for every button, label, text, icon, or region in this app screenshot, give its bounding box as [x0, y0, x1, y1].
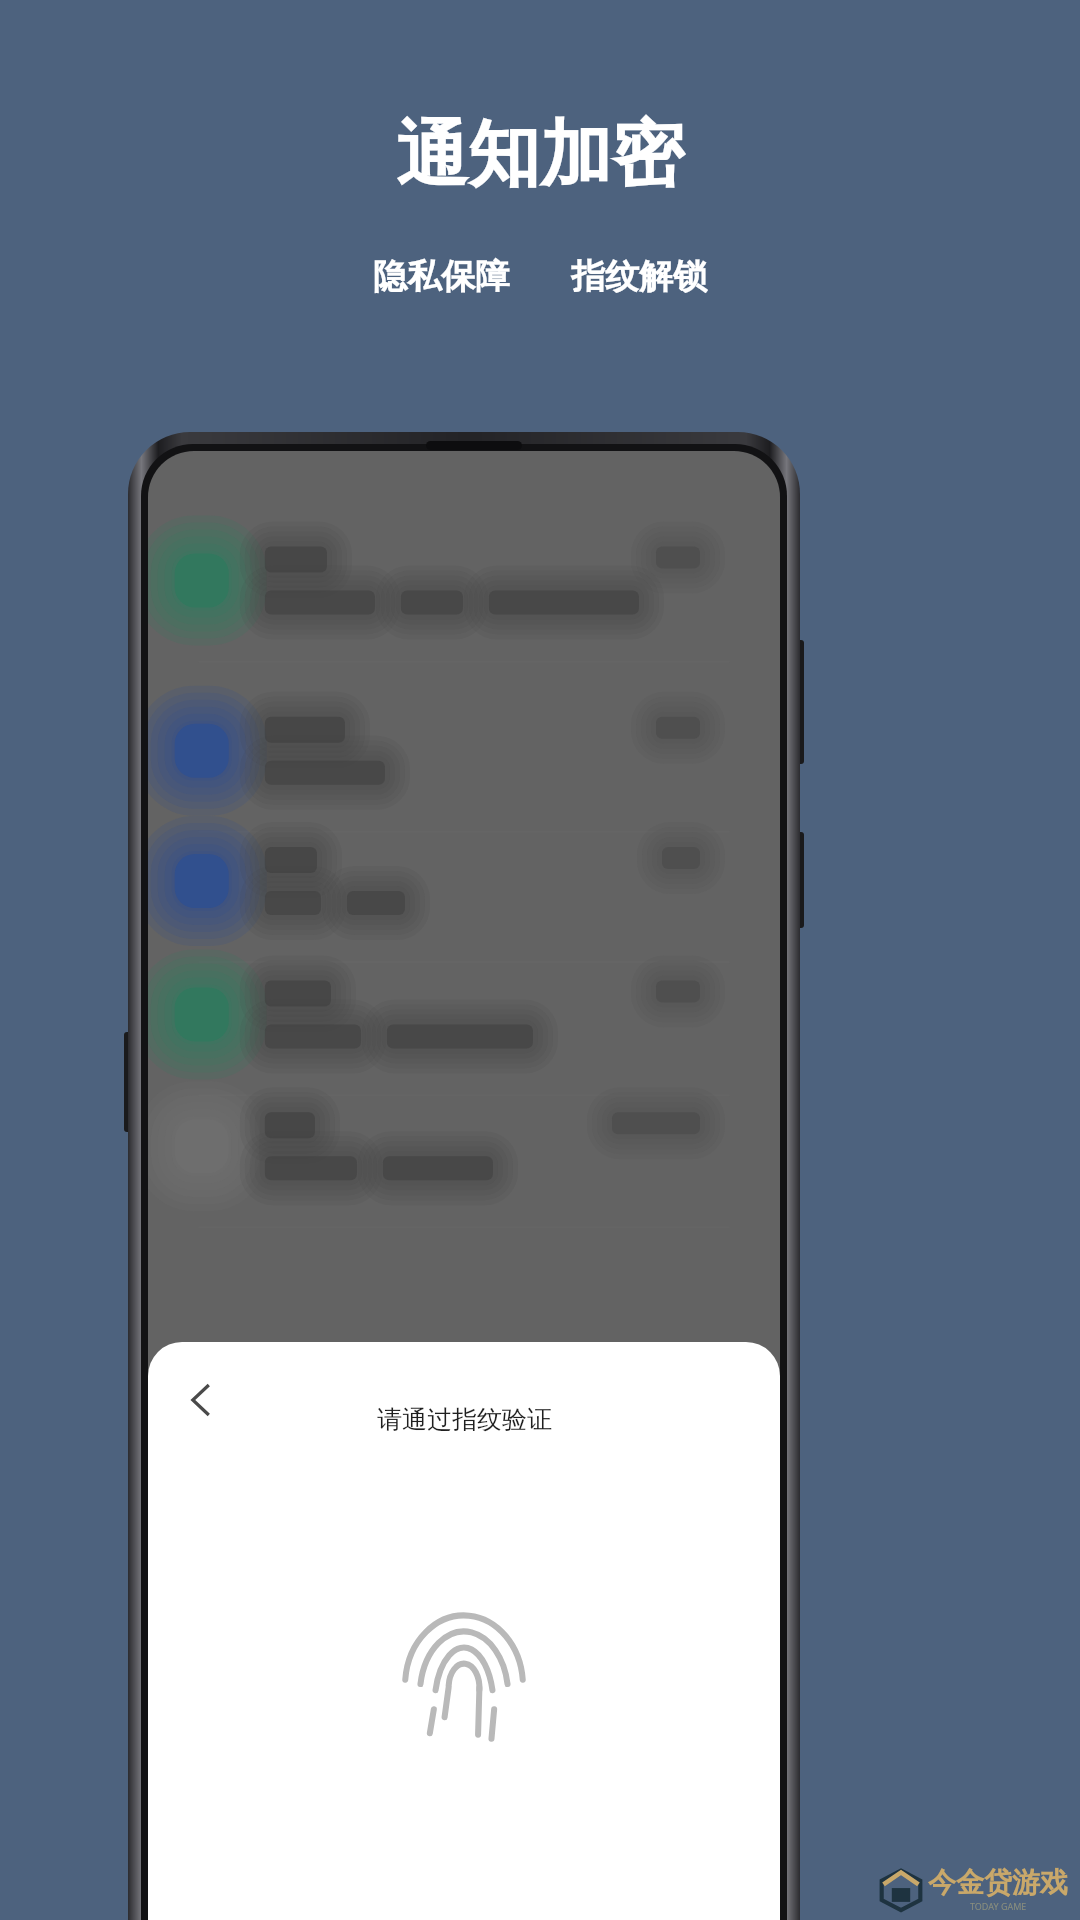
staticText: 请通过指纹验证	[377, 1404, 552, 1435]
button[interactable]: Back	[166, 1364, 238, 1436]
staticText: 指纹解锁	[571, 255, 707, 298]
button[interactable]: 今金贷游戏	[872, 1861, 1074, 1916]
staticText: 隐私保障	[373, 255, 509, 298]
button[interactable]: Fingerprint	[389, 1594, 539, 1744]
staticText: 通知加密	[396, 110, 684, 201]
staticText: 今金贷游戏	[928, 1865, 1068, 1900]
staticText: TODAY GAME	[970, 1900, 1027, 1912]
